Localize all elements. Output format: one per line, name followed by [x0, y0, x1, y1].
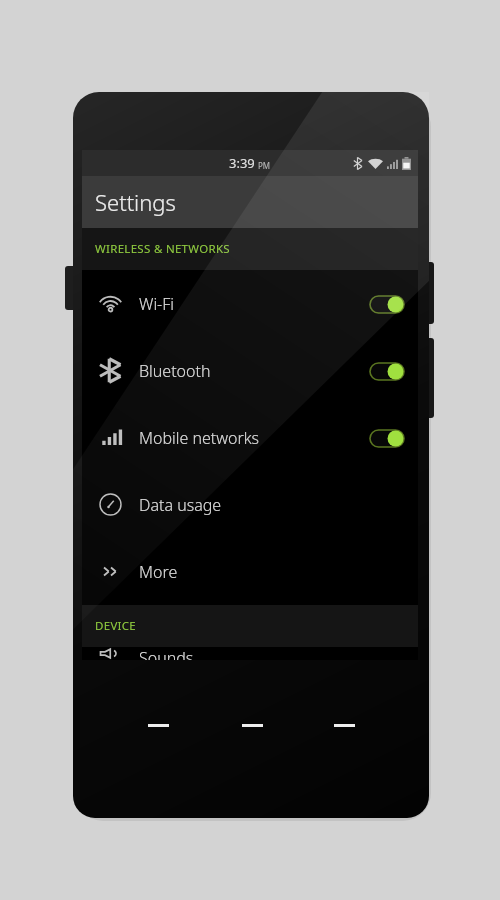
button[interactable]: Volume — [65, 266, 81, 310]
button[interactable]: Wi-Fi switch — [369, 290, 405, 318]
button[interactable]: More — [82, 538, 418, 605]
button[interactable]: Bluetooth switch — [369, 357, 405, 385]
staticText: Mobile networks — [139, 427, 260, 449]
button[interactable]: Home — [228, 711, 276, 739]
staticText: PM — [258, 160, 271, 171]
staticText: Sounds — [139, 647, 194, 660]
button[interactable]: Mobile networks — [82, 404, 418, 471]
button[interactable]: Settings — [82, 176, 418, 228]
button[interactable]: Wi-Fi — [82, 270, 418, 337]
staticText: WIRELESS & NETWORKS — [95, 241, 230, 257]
button[interactable]: Recents — [320, 711, 368, 739]
button[interactable]: Sounds — [82, 647, 418, 660]
button[interactable]: Power — [420, 262, 434, 324]
button[interactable]: Back — [134, 711, 182, 739]
staticText: Wi-Fi — [139, 293, 175, 315]
button[interactable]: Data usage — [82, 471, 418, 538]
staticText: 3:39 — [229, 154, 255, 172]
staticText: DEVICE — [95, 618, 137, 634]
staticText: More — [139, 561, 178, 583]
staticText: Settings — [95, 187, 176, 217]
button[interactable]: Bluetooth — [82, 337, 418, 404]
button[interactable]: Volume down — [420, 338, 434, 418]
staticText: Bluetooth — [139, 360, 211, 382]
staticText: Data usage — [139, 494, 222, 516]
button[interactable]: Mobile networks switch — [369, 424, 405, 452]
